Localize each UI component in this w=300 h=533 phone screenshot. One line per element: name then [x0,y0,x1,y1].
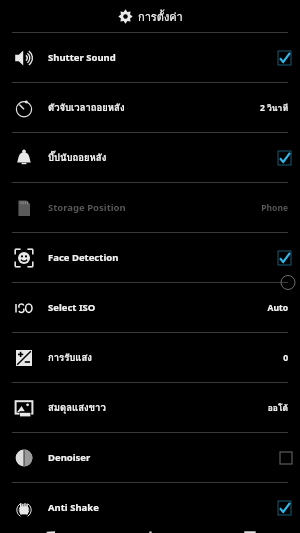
staticText: Shutter Sound [48,51,278,64]
staticText: สมดุลแสงขาว [48,400,267,415]
button[interactable]: สมดุลแสงขาว [0,383,300,432]
button[interactable]: Face Detection [0,233,300,282]
staticText: 0 [283,352,288,364]
staticText: การตั้งค่า [138,8,183,25]
staticText: ออโต้ [267,401,288,415]
staticText: Face Detection [48,251,278,264]
staticText: Storage Position [48,201,261,214]
staticText: บี๊ปนับถอยหลัง [48,150,278,165]
staticText: ตัวจับเวลาถอยหลัง [48,100,259,115]
button[interactable]: การรับแสง [0,333,300,382]
staticText: 2 วินาที [259,101,288,115]
staticText: Anti Shake [48,501,278,514]
button[interactable]: Select ISO [0,283,300,332]
button[interactable]: Storage Position [0,183,300,232]
button[interactable]: Shutter Sound [0,33,300,82]
staticText: Phone [261,202,288,214]
button[interactable]: Back [0,532,100,533]
button[interactable]: บี๊ปนับถอยหลัง [0,133,300,182]
staticText: Select ISO [48,301,267,314]
button[interactable]: Anti Shake [0,483,300,532]
staticText: การรับแสง [48,350,283,365]
staticText: Auto [267,302,288,314]
button[interactable]: Home [100,532,200,533]
button[interactable]: Denoiser [0,433,300,482]
button[interactable]: Recents [200,532,300,533]
button[interactable]: ตัวจับเวลาถอยหลัง [0,83,300,132]
staticText: Denoiser [48,451,280,464]
